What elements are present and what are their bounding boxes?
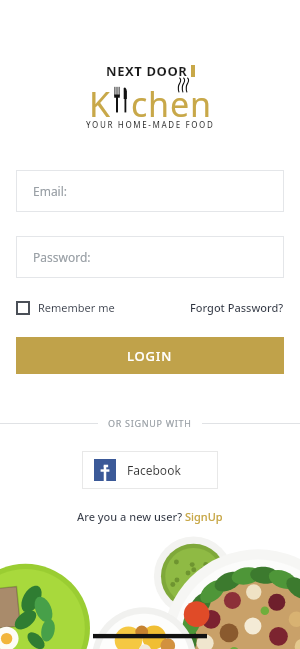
staticText: Remember me bbox=[38, 300, 115, 315]
button[interactable]: Password: bbox=[16, 236, 284, 278]
staticText: e bbox=[170, 81, 190, 117]
staticText: LOGIN bbox=[127, 347, 173, 365]
staticText: YOUR HOME-MADE FOOD bbox=[86, 119, 215, 130]
staticText: OR SIGNUP WITH bbox=[108, 417, 192, 429]
button[interactable]: Remember me bbox=[16, 300, 115, 315]
staticText: h bbox=[148, 81, 170, 117]
staticText: c bbox=[131, 81, 148, 117]
staticText: K bbox=[89, 81, 111, 117]
staticText: Password: bbox=[33, 249, 91, 265]
staticText: NEXT DOOR bbox=[106, 62, 188, 80]
staticText: Facebook bbox=[127, 462, 181, 478]
staticText: Email: bbox=[33, 183, 68, 199]
staticText: Are you a new user? SignUp bbox=[77, 509, 223, 524]
button[interactable]: Forgot Password? bbox=[190, 300, 284, 315]
button[interactable]: Are you a new user? SignUp bbox=[0, 509, 300, 524]
staticText: Forgot Password? bbox=[190, 300, 284, 315]
staticText: n bbox=[190, 81, 212, 117]
button[interactable]: Email: bbox=[16, 170, 284, 212]
button[interactable]: Facebook bbox=[82, 451, 218, 489]
button[interactable]: LOGIN bbox=[16, 337, 284, 374]
